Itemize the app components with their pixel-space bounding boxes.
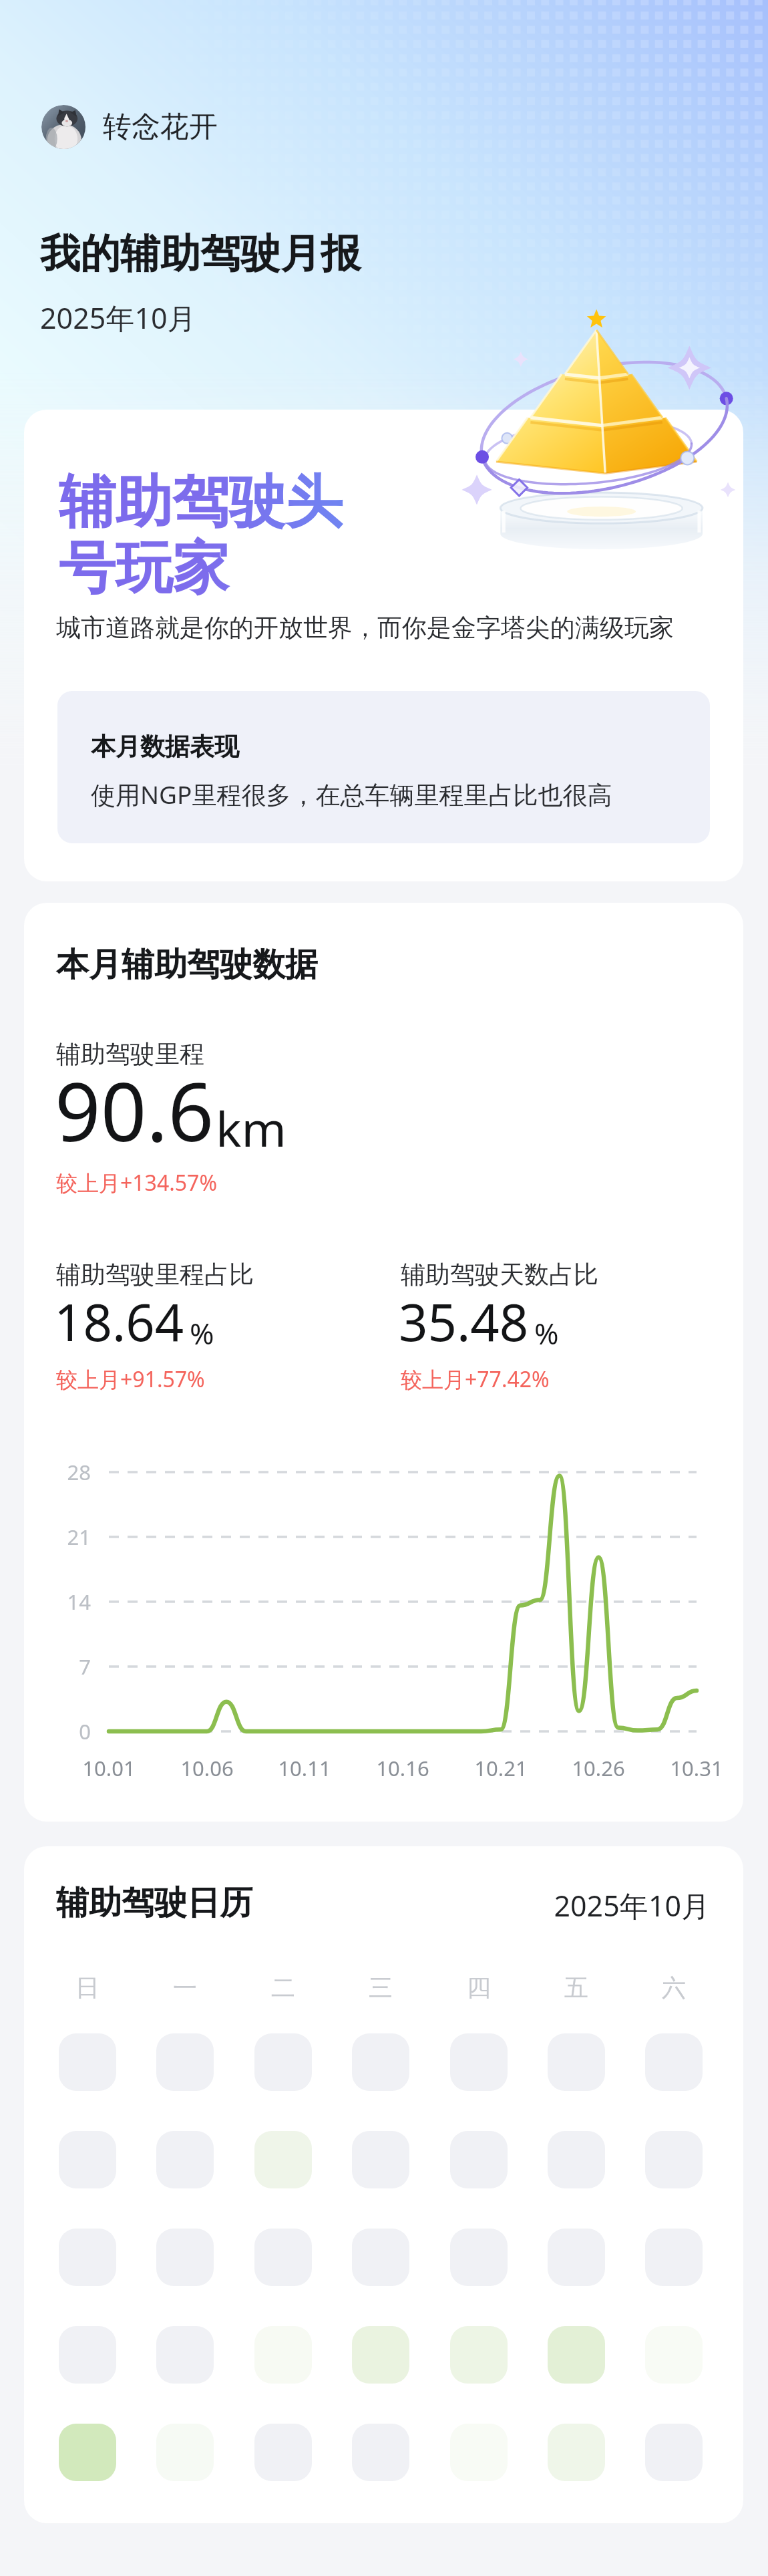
- button[interactable]: [548, 2131, 605, 2188]
- staticText: 10.01: [82, 1754, 136, 1782]
- staticText: 21: [67, 1523, 91, 1551]
- button[interactable]: [352, 2326, 409, 2384]
- staticText: 0: [79, 1717, 91, 1745]
- staticText: 10.06: [180, 1754, 234, 1782]
- staticText: 五: [564, 1973, 588, 2003]
- staticText: 辅助驾驶头 号玩家: [59, 466, 343, 604]
- staticText: 35.48: [399, 1287, 529, 1356]
- staticText: 较上月+134.57%: [56, 1168, 217, 1197]
- button[interactable]: [548, 2326, 605, 2384]
- staticText: 三: [369, 1973, 393, 2003]
- staticText: 10.31: [670, 1754, 723, 1782]
- other: Profile photo: [41, 105, 85, 149]
- staticText: 我的辅助驾驶月报: [40, 229, 361, 279]
- staticText: 10.26: [572, 1754, 625, 1782]
- button[interactable]: [645, 2131, 703, 2188]
- button[interactable]: [24, 410, 743, 881]
- button[interactable]: [254, 2229, 312, 2286]
- staticText: 90.6: [55, 1056, 214, 1165]
- button[interactable]: [352, 2229, 409, 2286]
- button[interactable]: [548, 2424, 605, 2481]
- staticText: 辅助驾驶里程: [56, 1038, 204, 1070]
- button[interactable]: [254, 2131, 312, 2188]
- button[interactable]: [156, 2131, 214, 2188]
- staticText: 较上月+91.57%: [56, 1365, 205, 1394]
- button[interactable]: [450, 2326, 508, 2384]
- staticText: 六: [662, 1973, 686, 2003]
- button[interactable]: [254, 2326, 312, 2384]
- button[interactable]: [548, 2229, 605, 2286]
- button[interactable]: Profile photo: [41, 105, 218, 149]
- button[interactable]: [59, 2033, 116, 2091]
- button[interactable]: [645, 2033, 703, 2091]
- staticText: 10.16: [376, 1754, 429, 1782]
- button[interactable]: [450, 2131, 508, 2188]
- button[interactable]: [645, 2229, 703, 2286]
- staticText: 本月数据表现: [91, 731, 239, 762]
- staticText: 城市道路就是你的开放世界，而你是金字塔尖的满级玩家: [56, 612, 674, 643]
- staticText: 辅助驾驶日历: [56, 1882, 252, 1924]
- staticText: km: [216, 1095, 286, 1161]
- staticText: 四: [467, 1973, 491, 2003]
- button[interactable]: [156, 2424, 214, 2481]
- staticText: 辅助驾驶里程占比: [56, 1259, 254, 1290]
- staticText: 日: [75, 1973, 100, 2003]
- button[interactable]: [450, 2033, 508, 2091]
- staticText: 一: [173, 1973, 197, 2003]
- staticText: %: [534, 1313, 559, 1353]
- button[interactable]: [352, 2033, 409, 2091]
- staticText: 二: [271, 1973, 295, 2003]
- staticText: 7: [79, 1653, 91, 1681]
- button[interactable]: [59, 2131, 116, 2188]
- button[interactable]: [548, 2033, 605, 2091]
- button[interactable]: [59, 2326, 116, 2384]
- staticText: 使用NGP里程很多，在总车辆里程里占比也很高: [91, 777, 612, 811]
- staticText: 辅助驾驶天数占比: [401, 1259, 598, 1290]
- staticText: 14: [67, 1588, 91, 1616]
- button[interactable]: [156, 2033, 214, 2091]
- button[interactable]: [156, 2326, 214, 2384]
- staticText: %: [190, 1313, 214, 1353]
- button[interactable]: [254, 2033, 312, 2091]
- button[interactable]: [352, 2424, 409, 2481]
- button[interactable]: [59, 2424, 116, 2481]
- staticText: 2025年10月: [40, 298, 196, 337]
- staticText: 10.21: [474, 1754, 528, 1782]
- staticText: 本月辅助驾驶数据: [56, 944, 318, 986]
- button[interactable]: [645, 2424, 703, 2481]
- staticText: 较上月+77.42%: [401, 1365, 550, 1394]
- staticText: 10.11: [278, 1754, 331, 1782]
- staticText: 转念花开: [103, 109, 218, 145]
- button[interactable]: [254, 2424, 312, 2481]
- button[interactable]: [59, 2229, 116, 2286]
- button[interactable]: [450, 2229, 508, 2286]
- staticText: 28: [67, 1458, 91, 1486]
- staticText: 18.64: [54, 1287, 184, 1356]
- button[interactable]: [156, 2229, 214, 2286]
- button[interactable]: [352, 2131, 409, 2188]
- staticText: 2025年10月: [554, 1886, 710, 1925]
